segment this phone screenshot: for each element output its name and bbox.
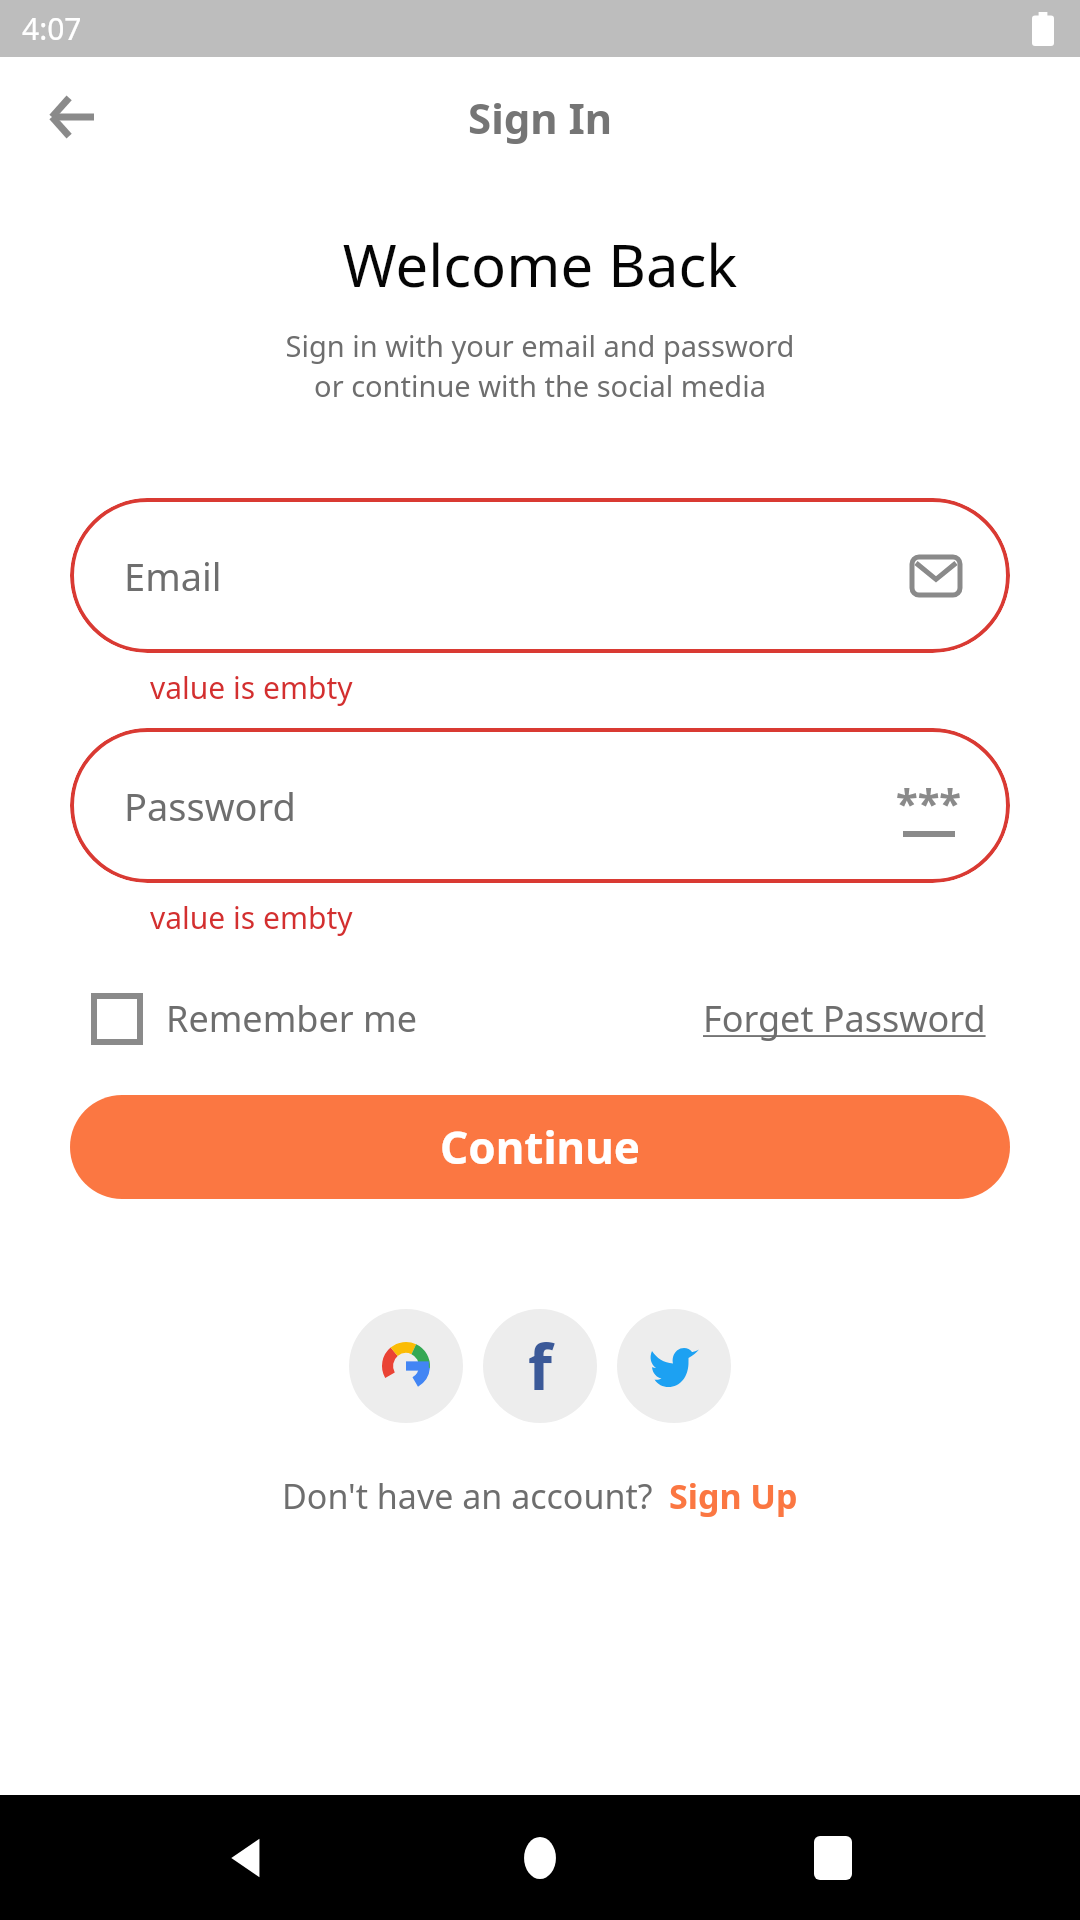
staticText: Don't have an account?	[282, 1473, 653, 1519]
staticText: Email	[124, 550, 222, 602]
button[interactable]: Back	[30, 75, 114, 159]
button[interactable]: Remember me	[94, 994, 417, 1043]
staticText: Sign In	[468, 89, 613, 146]
button[interactable]: Forget Password	[703, 994, 986, 1043]
button[interactable]: Sign Up	[669, 1473, 798, 1519]
staticText: Sign in with your email and password or …	[0, 326, 1080, 406]
button[interactable]: Back	[203, 1813, 293, 1903]
staticText: value is embty	[150, 897, 1080, 938]
button[interactable]: Home	[495, 1813, 585, 1903]
staticText: Password	[124, 780, 296, 832]
staticText: Welcome Back	[0, 225, 1080, 304]
button[interactable]: Continue	[70, 1095, 1010, 1199]
button[interactable]: Email	[70, 498, 1010, 653]
staticText: f	[528, 1324, 552, 1408]
staticText: value is embty	[150, 667, 1080, 708]
staticText: ***	[896, 775, 962, 829]
button[interactable]: Recents	[788, 1813, 878, 1903]
button[interactable]: Sign in with Facebook	[483, 1309, 597, 1423]
staticText: Continue	[440, 1117, 641, 1177]
staticText: Remember me	[166, 994, 417, 1043]
button[interactable]: Sign in with Twitter	[617, 1309, 731, 1423]
button[interactable]: Sign in with Google	[349, 1309, 463, 1423]
staticText: 4:07	[22, 8, 82, 49]
button[interactable]: Password	[70, 728, 1010, 883]
